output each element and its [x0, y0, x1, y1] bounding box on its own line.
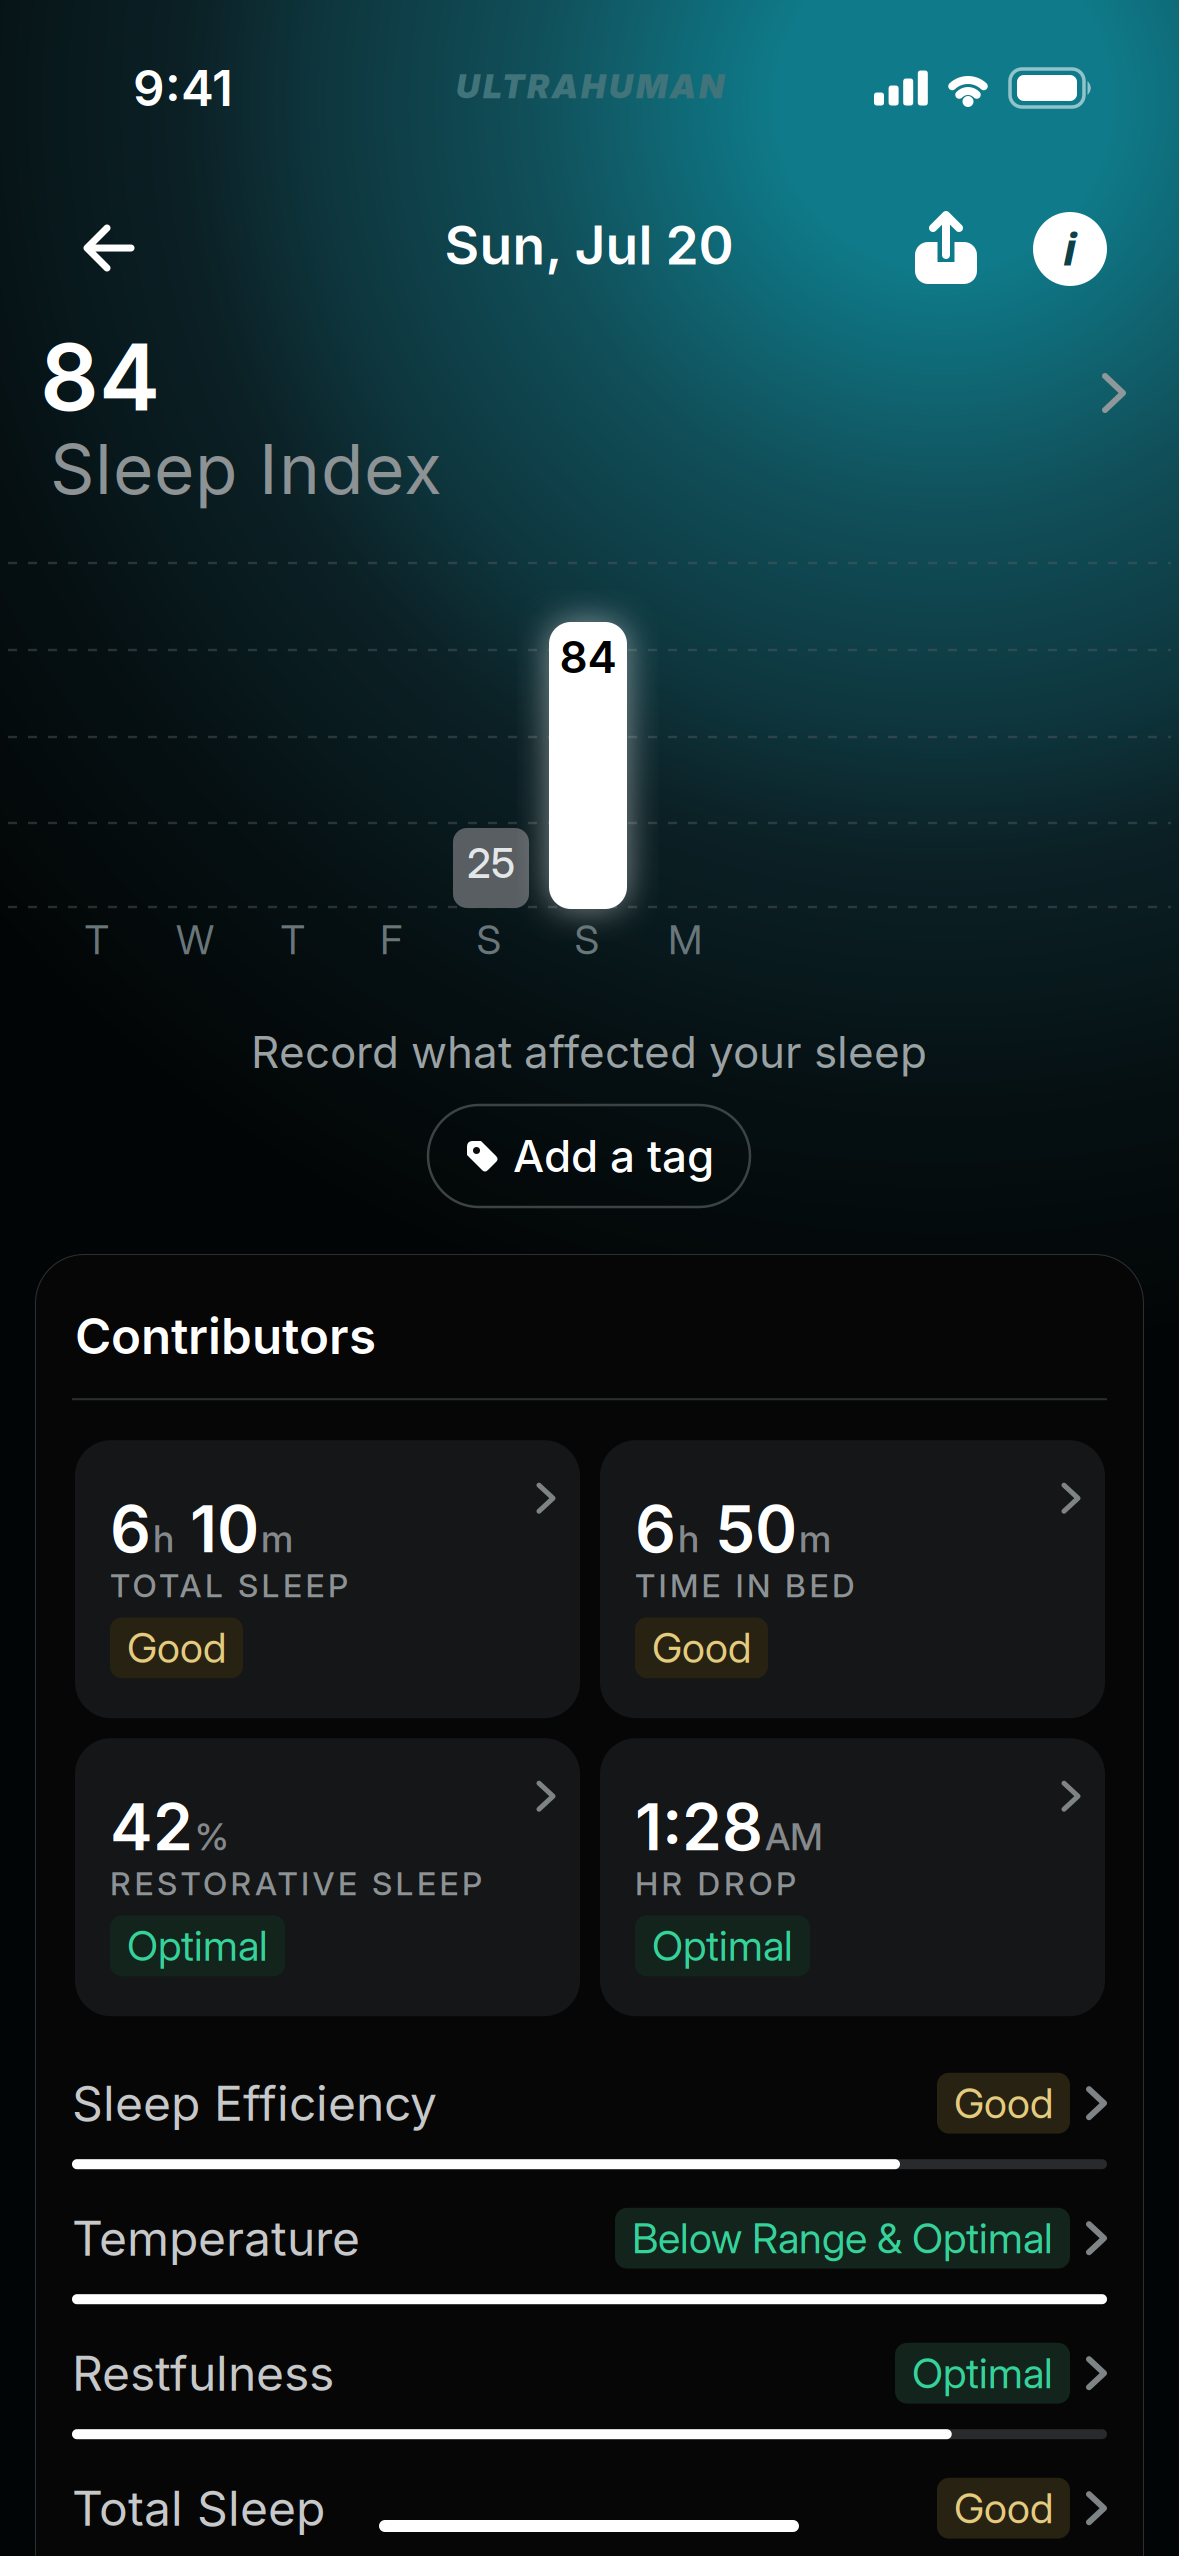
staticText: Good — [954, 2079, 1053, 2128]
staticText: m — [799, 1517, 831, 1561]
staticText: Sun, Jul 20 — [444, 213, 733, 276]
staticText: TOTAL SLEEP — [110, 1567, 348, 1604]
staticText: 50 — [715, 1491, 797, 1567]
button[interactable]: Total Sleep — [72, 2475, 1107, 2541]
staticText: h — [678, 1517, 699, 1561]
staticText: M — [668, 916, 702, 963]
staticText: Optimal — [912, 2349, 1053, 2398]
staticText: % — [195, 1815, 229, 1859]
staticText: RESTORATIVE SLEEP — [110, 1865, 482, 1902]
staticText: 9:41 — [133, 59, 233, 117]
staticText: Restfulness — [72, 2345, 334, 2401]
staticText: HR DROP — [635, 1865, 796, 1902]
staticText: Sleep Efficiency — [72, 2075, 437, 2131]
staticText: Total Sleep — [72, 2480, 325, 2536]
button[interactable]: Share — [902, 196, 990, 298]
staticText: Optimal — [127, 1921, 268, 1970]
staticText: 6 — [635, 1491, 676, 1567]
button[interactable]: Restfulness — [72, 2340, 1107, 2439]
button[interactable]: 42 — [75, 1738, 580, 2016]
button[interactable]: 1:28 — [600, 1738, 1105, 2016]
button[interactable]: 6 — [600, 1440, 1105, 1718]
staticText: AM — [765, 1815, 823, 1859]
staticText: T — [84, 916, 109, 963]
staticText: 25 — [467, 839, 515, 887]
button[interactable]: Back — [63, 204, 155, 292]
staticText: Good — [127, 1623, 226, 1672]
staticText: Contributors — [75, 1307, 376, 1365]
staticText: i — [1063, 217, 1077, 279]
staticText: T — [280, 916, 305, 963]
staticText: 42 — [110, 1789, 193, 1865]
button[interactable]: Add a tag — [428, 1105, 750, 1207]
staticText: h — [153, 1517, 174, 1561]
staticText: W — [176, 916, 214, 963]
staticText: Add a tag — [513, 1130, 714, 1182]
staticText: TIME IN BED — [635, 1567, 855, 1604]
staticText: F — [380, 916, 402, 963]
staticText: S — [574, 916, 599, 963]
staticText: 84 — [40, 323, 160, 431]
staticText: Good — [954, 2484, 1053, 2533]
staticText: Sleep Index — [50, 428, 442, 510]
staticText: m — [261, 1517, 293, 1561]
staticText: 6 — [110, 1491, 151, 1567]
staticText: Record what affected your sleep — [251, 1026, 927, 1078]
button[interactable]: Temperature — [72, 2205, 1107, 2304]
staticText: Optimal — [652, 1921, 793, 1970]
button[interactable]: Info — [1019, 198, 1121, 300]
staticText: 1:28 — [635, 1789, 763, 1865]
staticText: Good — [652, 1623, 751, 1672]
staticText: 84 — [559, 631, 616, 683]
staticText: S — [476, 916, 501, 963]
staticText: 10 — [190, 1491, 259, 1567]
staticText: Below Range & Optimal — [632, 2214, 1053, 2263]
staticText: ULTRAHUMAN — [456, 66, 724, 106]
button[interactable]: Sleep Efficiency — [72, 2070, 1107, 2169]
button[interactable]: 6 — [75, 1440, 580, 1718]
staticText: Temperature — [72, 2210, 360, 2266]
button[interactable]: Sleep Index details — [0, 0, 1179, 540]
